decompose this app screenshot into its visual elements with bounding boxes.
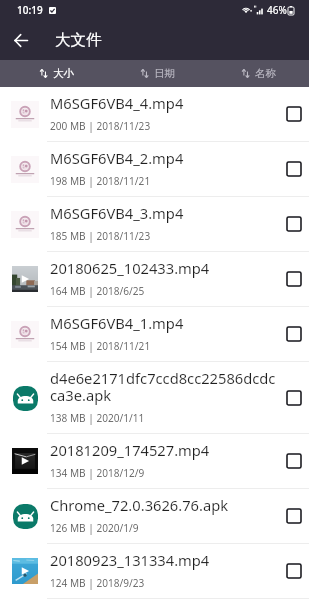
button[interactable]: Select file: [281, 157, 305, 181]
button[interactable]: Select file: [281, 102, 305, 126]
staticText: M6SGF6VB4_1.mp4: [50, 313, 184, 333]
button[interactable]: Select file: [281, 212, 305, 236]
button[interactable]: Select file: [281, 267, 305, 291]
staticText: 200 MB | 2018/11/23: [50, 119, 151, 133]
staticText: 185 MB | 2018/11/23: [50, 229, 151, 243]
staticText: 164 MB | 2018/6/25: [50, 284, 145, 298]
button[interactable]: Select file: [281, 559, 305, 583]
button[interactable]: 20181209_174527.mp4: [0, 434, 309, 489]
staticText: 138 MB | 2020/1/11: [50, 411, 145, 425]
button[interactable]: Select file: [281, 386, 305, 410]
staticText: 126 MB | 2020/1/9: [50, 521, 139, 535]
button[interactable]: M6SGF6VB4_4.mp4: [0, 87, 309, 142]
button[interactable]: Select file: [281, 449, 305, 473]
staticText: d4e6e2171dfc7ccd8cc22586dcdcca3e.apk: [50, 368, 281, 405]
button[interactable]: d4e6e2171dfc7ccd8cc22586dcdcca3e.apk: [0, 362, 309, 434]
staticText: 大文件: [55, 30, 102, 50]
button[interactable]: 日期: [107, 60, 208, 87]
staticText: 46%: [267, 3, 287, 17]
staticText: 20180625_102433.mp4: [50, 258, 210, 278]
button[interactable]: Select file: [281, 504, 305, 528]
button[interactable]: 名称: [208, 60, 309, 87]
button[interactable]: M6SGF6VB4_2.mp4: [0, 142, 309, 197]
staticText: M6SGF6VB4_2.mp4: [50, 148, 184, 168]
staticText: 日期: [154, 67, 175, 80]
staticText: 154 MB | 2018/11/21: [50, 339, 151, 353]
staticText: 10:19: [17, 3, 43, 17]
button[interactable]: Select file: [281, 322, 305, 346]
button[interactable]: M6SGF6VB4_3.mp4: [0, 197, 309, 252]
staticText: 134 MB | 2018/12/9: [50, 466, 145, 480]
button[interactable]: Chrome_72.0.3626.76.apk: [0, 489, 309, 544]
staticText: 20180923_131334.mp4: [50, 550, 210, 570]
staticText: 20181209_174527.mp4: [50, 440, 210, 460]
staticText: M6SGF6VB4_4.mp4: [50, 93, 184, 113]
button[interactable]: 20180625_102433.mp4: [0, 252, 309, 307]
staticText: 名称: [255, 67, 276, 80]
staticText: Chrome_72.0.3626.76.apk: [50, 495, 229, 515]
staticText: 大小: [53, 67, 74, 80]
button[interactable]: 20180923_131334.mp4: [0, 544, 309, 599]
button[interactable]: M6SGF6VB4_1.mp4: [0, 307, 309, 362]
button[interactable]: Back: [0, 20, 42, 60]
button[interactable]: 大小: [6, 60, 107, 87]
staticText: 124 MB | 2018/9/23: [50, 576, 145, 590]
staticText: 198 MB | 2018/11/21: [50, 174, 151, 188]
staticText: M6SGF6VB4_3.mp4: [50, 203, 184, 223]
